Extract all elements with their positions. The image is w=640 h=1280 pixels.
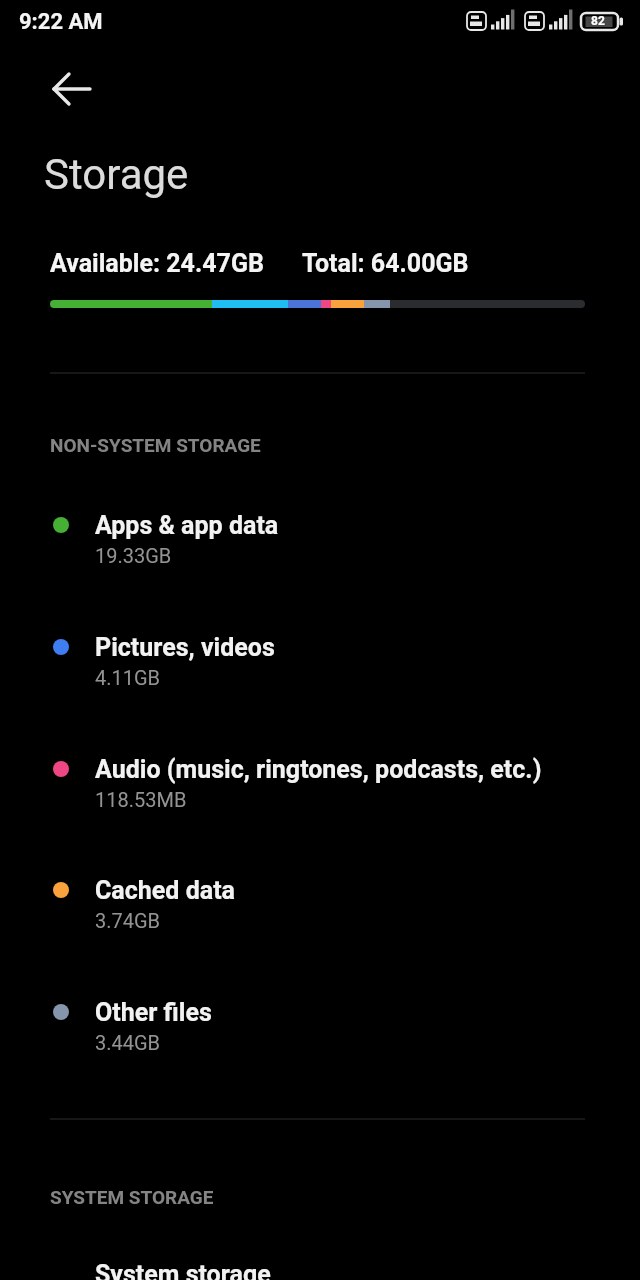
staticText: Storage	[44, 150, 189, 199]
staticText: 118.53MB	[95, 788, 187, 811]
button[interactable]: Audio (music, ringtones, podcasts, etc.)	[0, 734, 640, 846]
staticText: NON-SYSTEM STORAGE	[50, 434, 261, 456]
staticText: Other files	[95, 998, 212, 1027]
staticText: System storage	[95, 1260, 271, 1280]
staticText: Cached data	[95, 876, 236, 905]
staticText: 4.11GB	[95, 666, 161, 689]
staticText: Pictures, videos	[95, 633, 275, 662]
button[interactable]: Apps & app data	[0, 490, 640, 602]
staticText: SYSTEM STORAGE	[50, 1186, 214, 1208]
button[interactable]	[40, 57, 104, 121]
staticText: 9:22 AM	[19, 9, 103, 35]
button[interactable]: Other files	[0, 977, 640, 1089]
staticText: Apps & app data	[95, 511, 279, 540]
staticText: 3.44GB	[95, 1031, 161, 1054]
staticText: Available: 24.47GB	[50, 249, 264, 278]
button[interactable]: System storage	[0, 1239, 640, 1280]
button[interactable]: Cached data	[0, 855, 640, 967]
staticText: Total: 64.00GB	[302, 249, 469, 278]
staticText: Audio (music, ringtones, podcasts, etc.)	[95, 755, 542, 784]
button[interactable]: Pictures, videos	[0, 612, 640, 724]
staticText: 19.33GB	[95, 544, 172, 567]
staticText: 3.74GB	[95, 909, 161, 932]
staticText: 82	[591, 14, 605, 28]
